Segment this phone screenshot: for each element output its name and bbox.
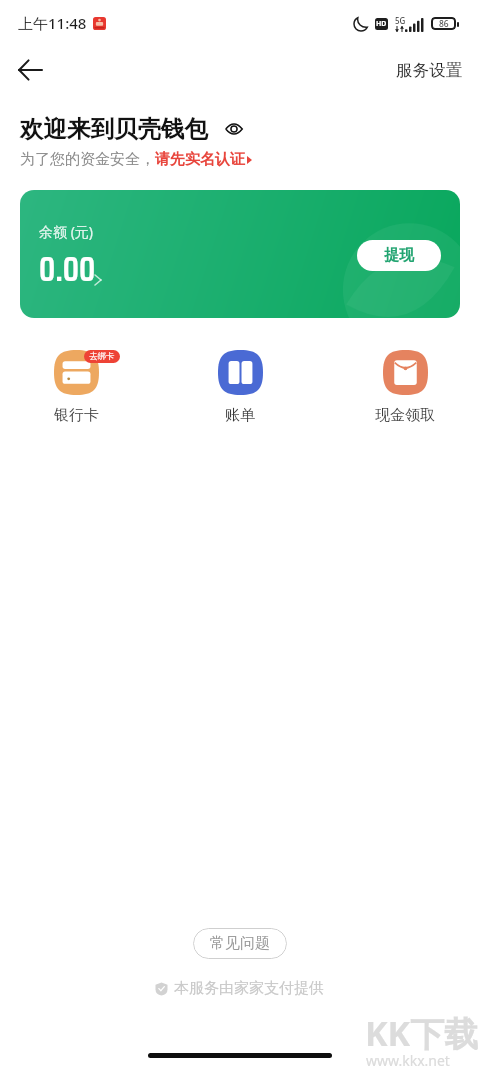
staticText: 请先实名认证 [155,150,245,169]
button[interactable]: 去绑卡 [21,350,131,425]
button[interactable]: 余额 (元) [20,190,460,318]
staticText: 本服务由家家支付提供 [174,979,324,998]
staticText: 余额 (元) [39,222,94,241]
staticText: HD [376,19,387,29]
button[interactable]: 服务设置 [378,50,480,91]
button[interactable]: 请先实名认证 [155,148,252,171]
staticText: 去绑卡 [89,351,115,362]
button[interactable]: 提现 [357,240,441,271]
staticText: 86 [439,18,449,30]
button[interactable]: Back [6,46,54,94]
button[interactable]: 账单 [185,350,295,425]
staticText: 银行卡 [54,406,99,425]
button[interactable]: 现金领取 [350,350,460,425]
button[interactable]: 常见问题 [193,928,287,959]
staticText: www.kkx.net [366,1051,450,1067]
staticText: 5G [395,15,406,26]
staticText: 欢迎来到贝壳钱包 [20,114,208,144]
staticText: 0.00 [39,242,96,296]
staticText: 上午11:48 [18,13,87,33]
staticText: 现金领取 [375,406,435,425]
button[interactable]: Toggle balance visibility [223,118,245,140]
staticText: 账单 [225,406,255,425]
staticText: 提现 [384,246,414,265]
staticText: 为了您的资金安全， [20,150,155,169]
staticText: 常见问题 [210,934,270,953]
staticText: KK下载 [365,1010,479,1056]
staticText: 服务设置 [396,60,462,81]
